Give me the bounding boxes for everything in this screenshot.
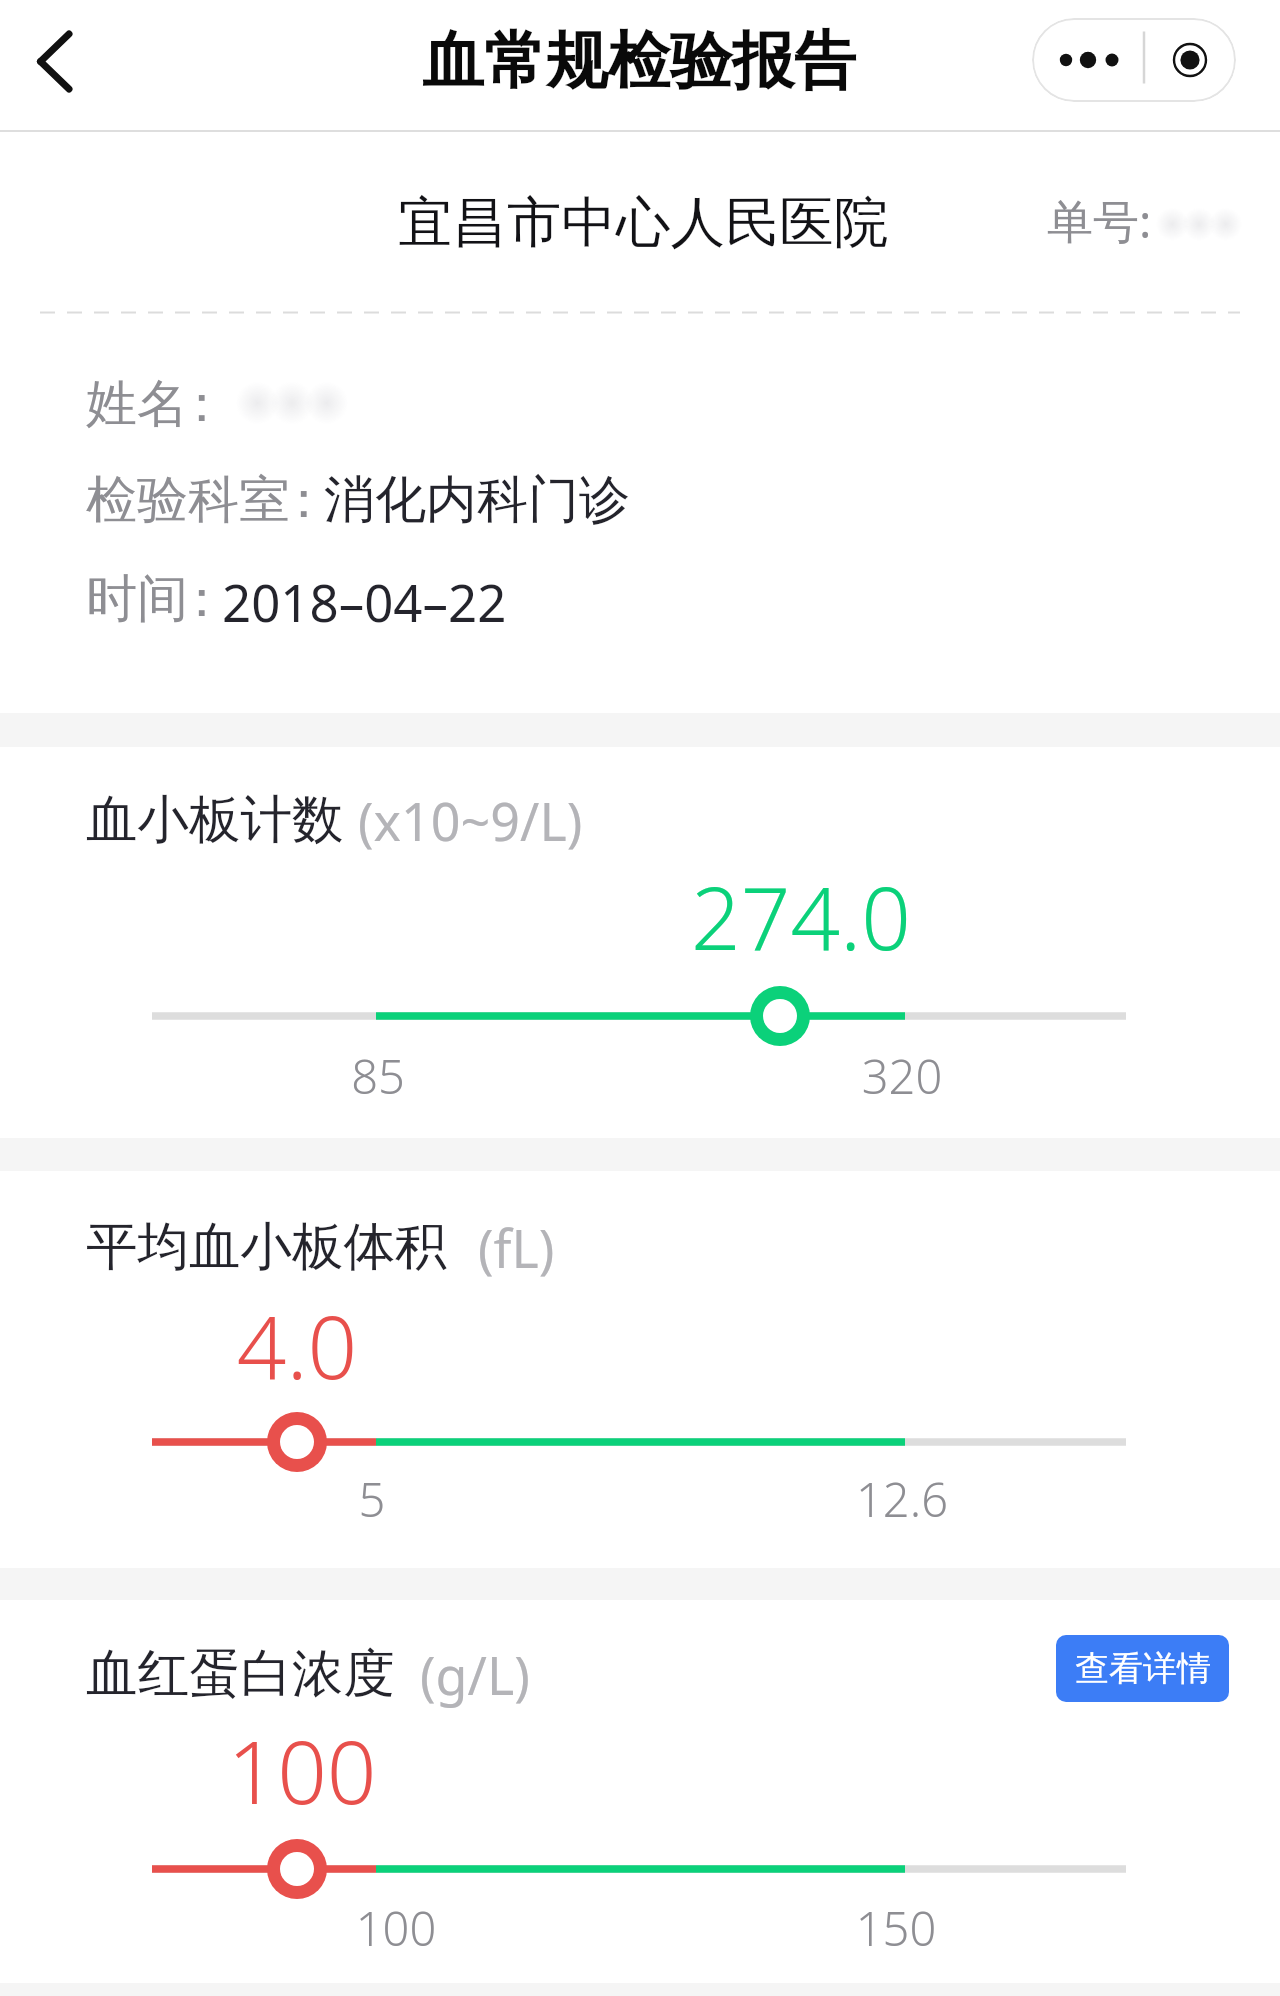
staticText: 274.0 (631, 857, 971, 975)
staticText: ： (278, 468, 312, 532)
staticText: 单号: (1047, 189, 1152, 252)
staticText: 12.6 (752, 1467, 1052, 1531)
staticText: 平均血小板体积 (86, 1214, 447, 1279)
staticText: 检验科室 (86, 468, 290, 532)
staticText: 100 (132, 1711, 472, 1829)
staticText: 宜昌市中心人民医院 (398, 189, 889, 258)
staticText: 150 (746, 1896, 1046, 1960)
staticText: 4.0 (127, 1286, 467, 1404)
staticText: 320 (752, 1044, 1052, 1108)
staticText: 血常规检验报告 (422, 22, 856, 100)
staticText: 85 (228, 1044, 528, 1108)
staticText: 姓名 (86, 372, 188, 436)
staticText: (g/L) (420, 1639, 530, 1710)
button[interactable]: More options (1032, 18, 1236, 102)
staticText: (x10~9/L) (358, 785, 583, 856)
staticText: 血红蛋白浓度 (86, 1641, 395, 1706)
button[interactable]: Back (0, 0, 116, 124)
staticText: 消化内科门诊 (324, 468, 630, 532)
staticText: 5 (222, 1467, 522, 1531)
button[interactable]: 血小板计数 (0, 747, 1280, 1138)
staticText: ： (176, 567, 210, 631)
button[interactable]: 查看详情 (1056, 1635, 1229, 1702)
staticText: 血小板计数 (86, 787, 344, 852)
button[interactable]: 平均血小板体积 (0, 1171, 1280, 1568)
staticText: 时间 (86, 567, 188, 631)
button[interactable]: 血红蛋白浓度 (0, 1600, 1280, 1983)
staticText: (fL) (478, 1212, 555, 1283)
staticText: 查看详情 (1075, 1647, 1211, 1690)
staticText: ： (176, 372, 210, 436)
staticText: 2018–04–22 (222, 567, 507, 636)
staticText: 100 (246, 1896, 546, 1960)
